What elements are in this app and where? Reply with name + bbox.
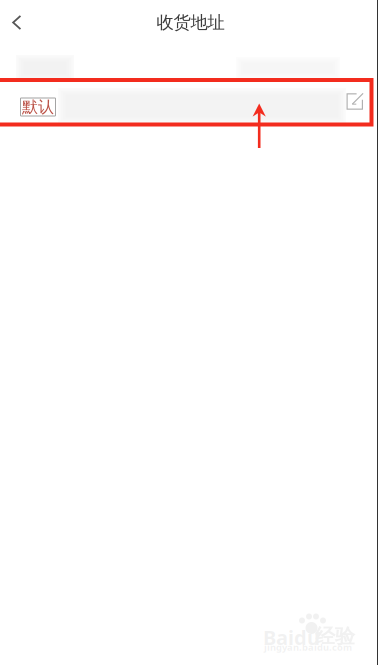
staticText: Baidu	[263, 624, 320, 651]
button[interactable]: 返回	[0, 0, 34, 45]
staticText: 默认	[22, 97, 54, 117]
button[interactable]: 默认	[0, 84, 381, 130]
staticText: jingyan.baidu.com	[264, 641, 352, 653]
staticText: 收货地址	[156, 12, 224, 33]
staticText: 经验	[315, 624, 355, 649]
